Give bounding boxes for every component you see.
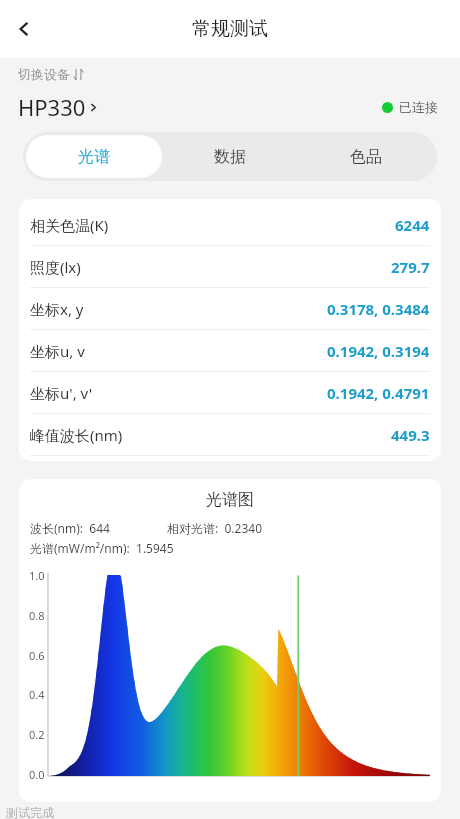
staticText: 光谱图 <box>19 490 441 510</box>
staticText: 0.0 <box>29 767 45 782</box>
staticText: 0.3178, 0.3484 <box>327 299 430 319</box>
staticText: 坐标x, y <box>30 299 84 319</box>
staticText: 相关色温(K) <box>30 215 109 235</box>
button[interactable]: 切换设备 <box>18 66 84 82</box>
staticText: 常规测试 <box>192 17 268 41</box>
staticText: 测试完成 <box>6 805 54 819</box>
button[interactable]: 峰值波长(nm) <box>19 414 441 455</box>
staticText: 279.7 <box>391 257 430 277</box>
button[interactable]: 相关色温(K) <box>19 204 441 245</box>
button[interactable]: 坐标x, y <box>19 288 441 329</box>
staticText: 坐标u', v' <box>30 383 93 403</box>
staticText: 波长(nm): 644 <box>30 520 110 536</box>
staticText: 照度(lx) <box>30 257 81 277</box>
button[interactable]: 色品 <box>298 135 434 178</box>
staticText: 1.0 <box>29 568 45 583</box>
staticText: 光谱 <box>78 147 110 167</box>
staticText: 切换设备 <box>18 66 70 82</box>
staticText: HP330 <box>18 92 86 122</box>
staticText: 0.2 <box>29 727 45 742</box>
staticText: 0.6 <box>29 648 45 663</box>
staticText: 449.3 <box>391 425 430 445</box>
staticText: 0.8 <box>29 608 45 623</box>
staticText: 0.4 <box>29 687 45 702</box>
button[interactable]: 坐标u, v <box>19 330 441 371</box>
staticText: 色品 <box>350 147 382 167</box>
staticText: 6244 <box>395 215 430 235</box>
staticText: 峰值波长(nm) <box>30 425 123 445</box>
staticText: 数据 <box>214 147 246 167</box>
button[interactable]: 光谱 <box>26 135 162 178</box>
staticText: 坐标u, v <box>30 341 85 361</box>
staticText: 光谱(mW/m²/nm): 1.5945 <box>30 540 174 556</box>
staticText: 0.1942, 0.4791 <box>327 383 430 403</box>
button[interactable]: HP330 <box>18 92 100 122</box>
staticText: 相对光谱: 0.2340 <box>167 520 262 536</box>
button[interactable]: 坐标u', v' <box>19 372 441 413</box>
button[interactable]: 照度(lx) <box>19 246 441 287</box>
staticText: 0.1942, 0.3194 <box>327 341 430 361</box>
button[interactable]: 数据 <box>162 135 298 178</box>
staticText: 已连接 <box>399 99 438 115</box>
button[interactable]: Back <box>0 5 48 53</box>
